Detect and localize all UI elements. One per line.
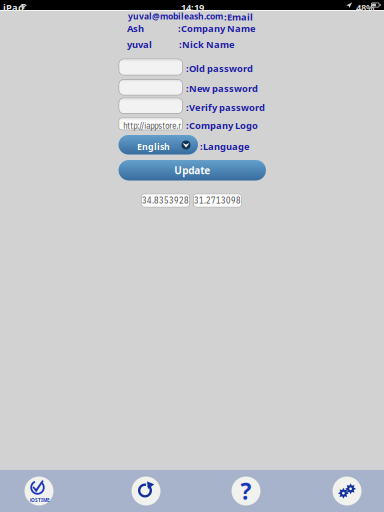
staticText: yuval@mobileash.com [128,10,223,22]
staticText: 14:19 [181,1,204,14]
staticText: English [137,140,170,152]
button[interactable]: Update [118,160,266,180]
staticText: iPad [3,1,24,14]
button[interactable]: Verify password [118,97,183,114]
staticText: Update [174,163,210,177]
staticText: ? [240,476,251,506]
button[interactable]: Refresh [131,476,160,505]
staticText: :Email [224,10,253,23]
button[interactable]: Company Logo [118,117,183,130]
staticText: :Old password [186,62,253,75]
staticText: :Language [200,140,250,153]
button[interactable]: 34.8353928 [141,193,190,207]
staticText: :Verify password [186,101,265,114]
staticText: :Company Logo [186,119,258,132]
button[interactable]: Help [231,476,260,505]
staticText: :New password [186,82,258,95]
staticText: iOSTIME [30,497,50,503]
staticText: :Nick Name [179,38,235,51]
staticText: http://iappstore.r [123,120,181,131]
button[interactable]: New password [118,79,183,95]
button[interactable]: 31.2713098 [193,193,242,207]
staticText: 31.2713098 [194,195,241,206]
button[interactable]: English [118,135,198,154]
staticText: 48% [356,1,374,14]
button[interactable]: iOSTIME [24,476,53,505]
staticText: 34.8353928 [142,195,189,206]
button[interactable]: Old password [118,58,183,75]
staticText: Ash [127,22,144,35]
button[interactable]: Settings [332,476,361,505]
staticText: yuval [127,38,152,51]
staticText: :Company Name [178,22,256,35]
